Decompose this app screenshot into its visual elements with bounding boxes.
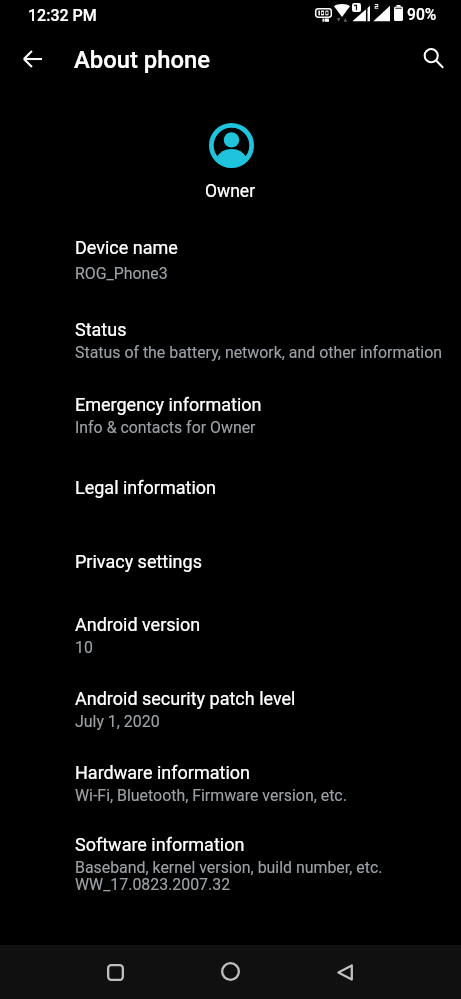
staticText: 90%: [407, 5, 437, 23]
staticText: Privacy settings: [75, 551, 202, 572]
staticText: Android security patch level: [75, 688, 296, 709]
button[interactable]: Android security patch level: [0, 679, 461, 727]
button[interactable]: Android version: [0, 605, 461, 653]
staticText: WW_17.0823.2007.32: [75, 875, 231, 894]
staticText: Hardware information: [75, 762, 250, 783]
staticText: ROG_Phone3: [75, 264, 168, 283]
button[interactable]: Software information: [0, 825, 461, 890]
button[interactable]: Search: [405, 30, 461, 86]
button[interactable]: Emergency information: [0, 385, 461, 433]
staticText: Emergency information: [75, 394, 262, 415]
staticText: Software information: [75, 834, 245, 855]
staticText: Wi-Fi, Bluetooth, Firmware version, etc.: [75, 786, 347, 805]
button[interactable]: Device name: [0, 228, 461, 276]
staticText: Baseband, kernel version, build number, …: [75, 858, 383, 877]
staticText: Device name: [75, 237, 178, 258]
button[interactable]: Navigate up: [4, 30, 60, 86]
button[interactable]: Status: [0, 310, 461, 358]
staticText: July 1, 2020: [75, 712, 160, 731]
button[interactable]: Privacy settings: [0, 542, 461, 573]
staticText: Status of the battery, network, and othe…: [75, 343, 442, 362]
staticText: Owner: [205, 181, 256, 202]
button[interactable]: Recent apps: [87, 945, 143, 999]
staticText: Android version: [75, 614, 201, 635]
button[interactable]: Back: [317, 945, 373, 999]
staticText: About phone: [74, 46, 211, 74]
staticText: Status: [75, 319, 127, 340]
staticText: 12:32 PM: [28, 6, 97, 25]
staticText: 10: [75, 638, 93, 657]
button[interactable]: Hardware information: [0, 753, 461, 801]
staticText: Legal information: [75, 477, 216, 498]
button[interactable]: Owner: [0, 108, 461, 204]
button[interactable]: Legal information: [0, 468, 461, 499]
staticText: Info & contacts for Owner: [75, 418, 256, 437]
button[interactable]: Home: [202, 945, 258, 999]
